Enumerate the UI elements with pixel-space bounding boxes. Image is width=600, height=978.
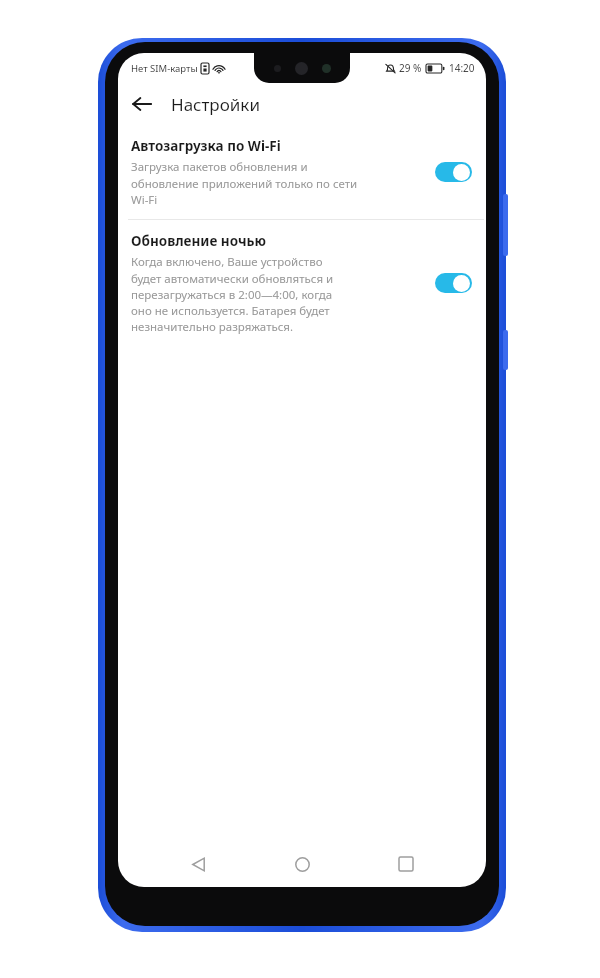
button[interactable]: Обновление ночью bbox=[118, 220, 486, 346]
staticText: Загрузка пакетов обновления и обновление… bbox=[131, 159, 358, 207]
staticText: Когда включено, Ваше устройство будет ав… bbox=[131, 254, 334, 334]
button[interactable]: Toggle bbox=[431, 158, 476, 186]
staticText: Обновление ночью bbox=[131, 232, 267, 250]
button[interactable]: Toggle bbox=[431, 269, 476, 297]
button[interactable]: Back bbox=[122, 84, 162, 124]
staticText: Нет SIM-карты bbox=[131, 62, 198, 75]
button[interactable]: Recents bbox=[382, 841, 430, 887]
button[interactable]: Home bbox=[278, 841, 326, 887]
staticText: Настройки bbox=[171, 93, 260, 116]
staticText: Автозагрузка по Wi-Fi bbox=[131, 137, 281, 155]
button[interactable]: Автозагрузка по Wi-Fi bbox=[118, 125, 486, 219]
button[interactable]: Back bbox=[174, 841, 222, 887]
staticText: 14:20 bbox=[449, 61, 475, 75]
staticText: 29 % bbox=[399, 61, 422, 75]
